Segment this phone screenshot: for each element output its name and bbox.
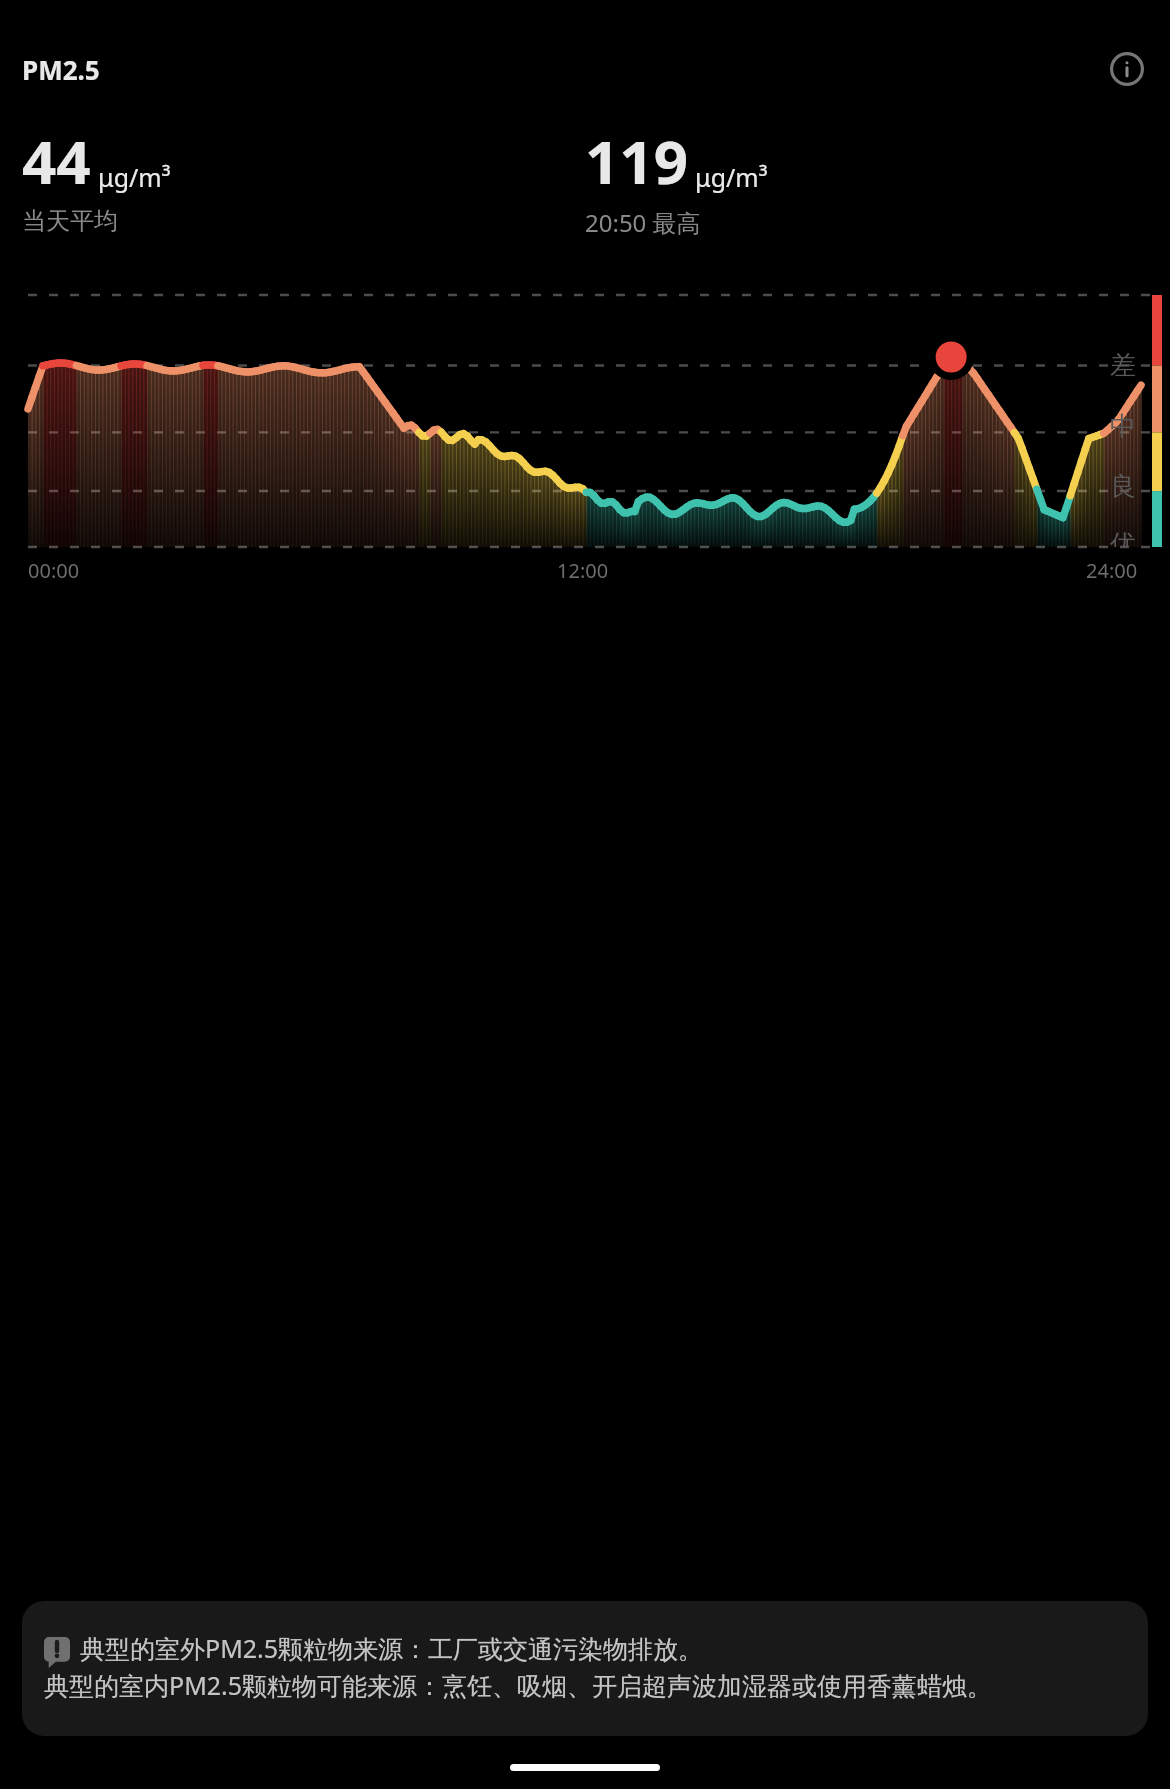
staticText: μg/m³ xyxy=(98,160,171,194)
staticText: μg/m³ xyxy=(695,160,768,194)
staticText: 典型的室内PM2.5颗粒物可能来源：烹饪、吸烟、开启超声波加湿器或使用香薰蜡烛。 xyxy=(44,1668,993,1702)
staticText: 24:00 xyxy=(1086,557,1138,584)
staticText: 20:50 最高 xyxy=(585,206,701,239)
staticText: 良 xyxy=(1110,470,1136,503)
staticText: 当天平均 xyxy=(22,206,118,236)
staticText: 中 xyxy=(1110,410,1136,443)
staticText: 差 xyxy=(1110,349,1136,382)
button[interactable]: Information xyxy=(1104,46,1150,92)
staticText: 00:00 xyxy=(28,557,80,584)
staticText: 优 xyxy=(1110,528,1136,547)
staticText: 119 xyxy=(585,120,688,202)
staticText: 12:00 xyxy=(557,557,609,584)
staticText: 典型的室外PM2.5颗粒物来源：工厂或交通污染物排放。 xyxy=(80,1631,704,1665)
staticText: PM2.5 xyxy=(22,52,100,87)
button[interactable]: 典型的室外PM2.5颗粒物来源：工厂或交通污染物排放。 xyxy=(22,1601,1148,1736)
staticText: 44 xyxy=(22,120,91,202)
